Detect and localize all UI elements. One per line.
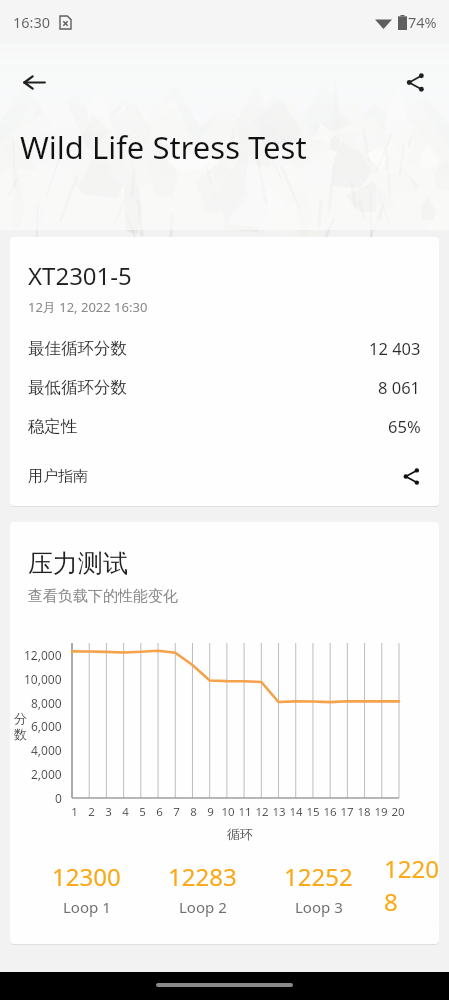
staticText: 10,000	[24, 671, 62, 687]
staticText: 2,000	[31, 766, 62, 782]
staticText: 9	[207, 804, 214, 820]
staticText: Wild Life Stress Test	[20, 126, 307, 168]
button[interactable]: 12208	[384, 852, 439, 924]
staticText: 最低循环分数	[28, 377, 127, 398]
button[interactable]: 12283	[152, 852, 252, 924]
staticText: 8 061	[378, 376, 421, 398]
staticText: 查看负载下的性能变化	[28, 587, 178, 606]
staticText: 12283	[168, 860, 237, 893]
staticText: 12252	[284, 860, 353, 893]
staticText: 4,000	[31, 742, 62, 758]
button[interactable]: 12300	[36, 852, 136, 924]
staticText: Loop 2	[179, 897, 227, 917]
staticText: 10	[221, 804, 235, 820]
staticText: 数	[14, 726, 27, 742]
staticText: 12 403	[369, 337, 421, 359]
staticText: 12,000	[24, 647, 62, 663]
staticText: 1	[71, 804, 78, 820]
staticText: 6,000	[31, 718, 62, 734]
staticText: 8,000	[31, 695, 62, 711]
staticText: 7	[173, 804, 180, 820]
staticText: 14	[289, 804, 303, 820]
staticText: 分	[14, 710, 27, 726]
staticText: Loop 3	[295, 897, 343, 917]
staticText: 0	[55, 790, 62, 806]
staticText: 压力测试	[28, 548, 128, 579]
staticText: XT2301-5	[28, 259, 132, 292]
staticText: 12300	[52, 860, 121, 893]
staticText: 74%	[408, 12, 437, 32]
staticText: 13	[272, 804, 286, 820]
button[interactable]: 12252	[268, 852, 368, 924]
staticText: 12208	[384, 852, 439, 918]
staticText: 2	[88, 804, 95, 820]
staticText: 循环	[227, 826, 253, 842]
staticText: 12月 12, 2022 16:30	[28, 298, 148, 316]
button[interactable]: Back	[10, 58, 58, 106]
staticText: 8	[190, 804, 197, 820]
staticText: 6	[156, 804, 163, 820]
staticText: 20	[391, 804, 405, 820]
staticText: 11	[238, 804, 252, 820]
staticText: 5	[139, 804, 146, 820]
staticText: 用户指南	[28, 467, 88, 486]
staticText: Loop 1	[63, 897, 111, 917]
staticText: 12	[255, 804, 269, 820]
button[interactable]: 用户指南	[28, 465, 421, 488]
staticText: 15	[306, 804, 320, 820]
staticText: 16	[323, 804, 337, 820]
staticText: 18	[357, 804, 371, 820]
staticText: 4	[122, 804, 129, 820]
staticText: 稳定性	[28, 416, 78, 437]
staticText: 65%	[388, 415, 421, 437]
staticText: 3	[105, 804, 112, 820]
staticText: 16:30	[13, 12, 51, 32]
staticText: 17	[340, 804, 354, 820]
staticText: 最佳循环分数	[28, 338, 127, 359]
staticText: 19	[374, 804, 388, 820]
button[interactable]: Share	[391, 58, 439, 106]
